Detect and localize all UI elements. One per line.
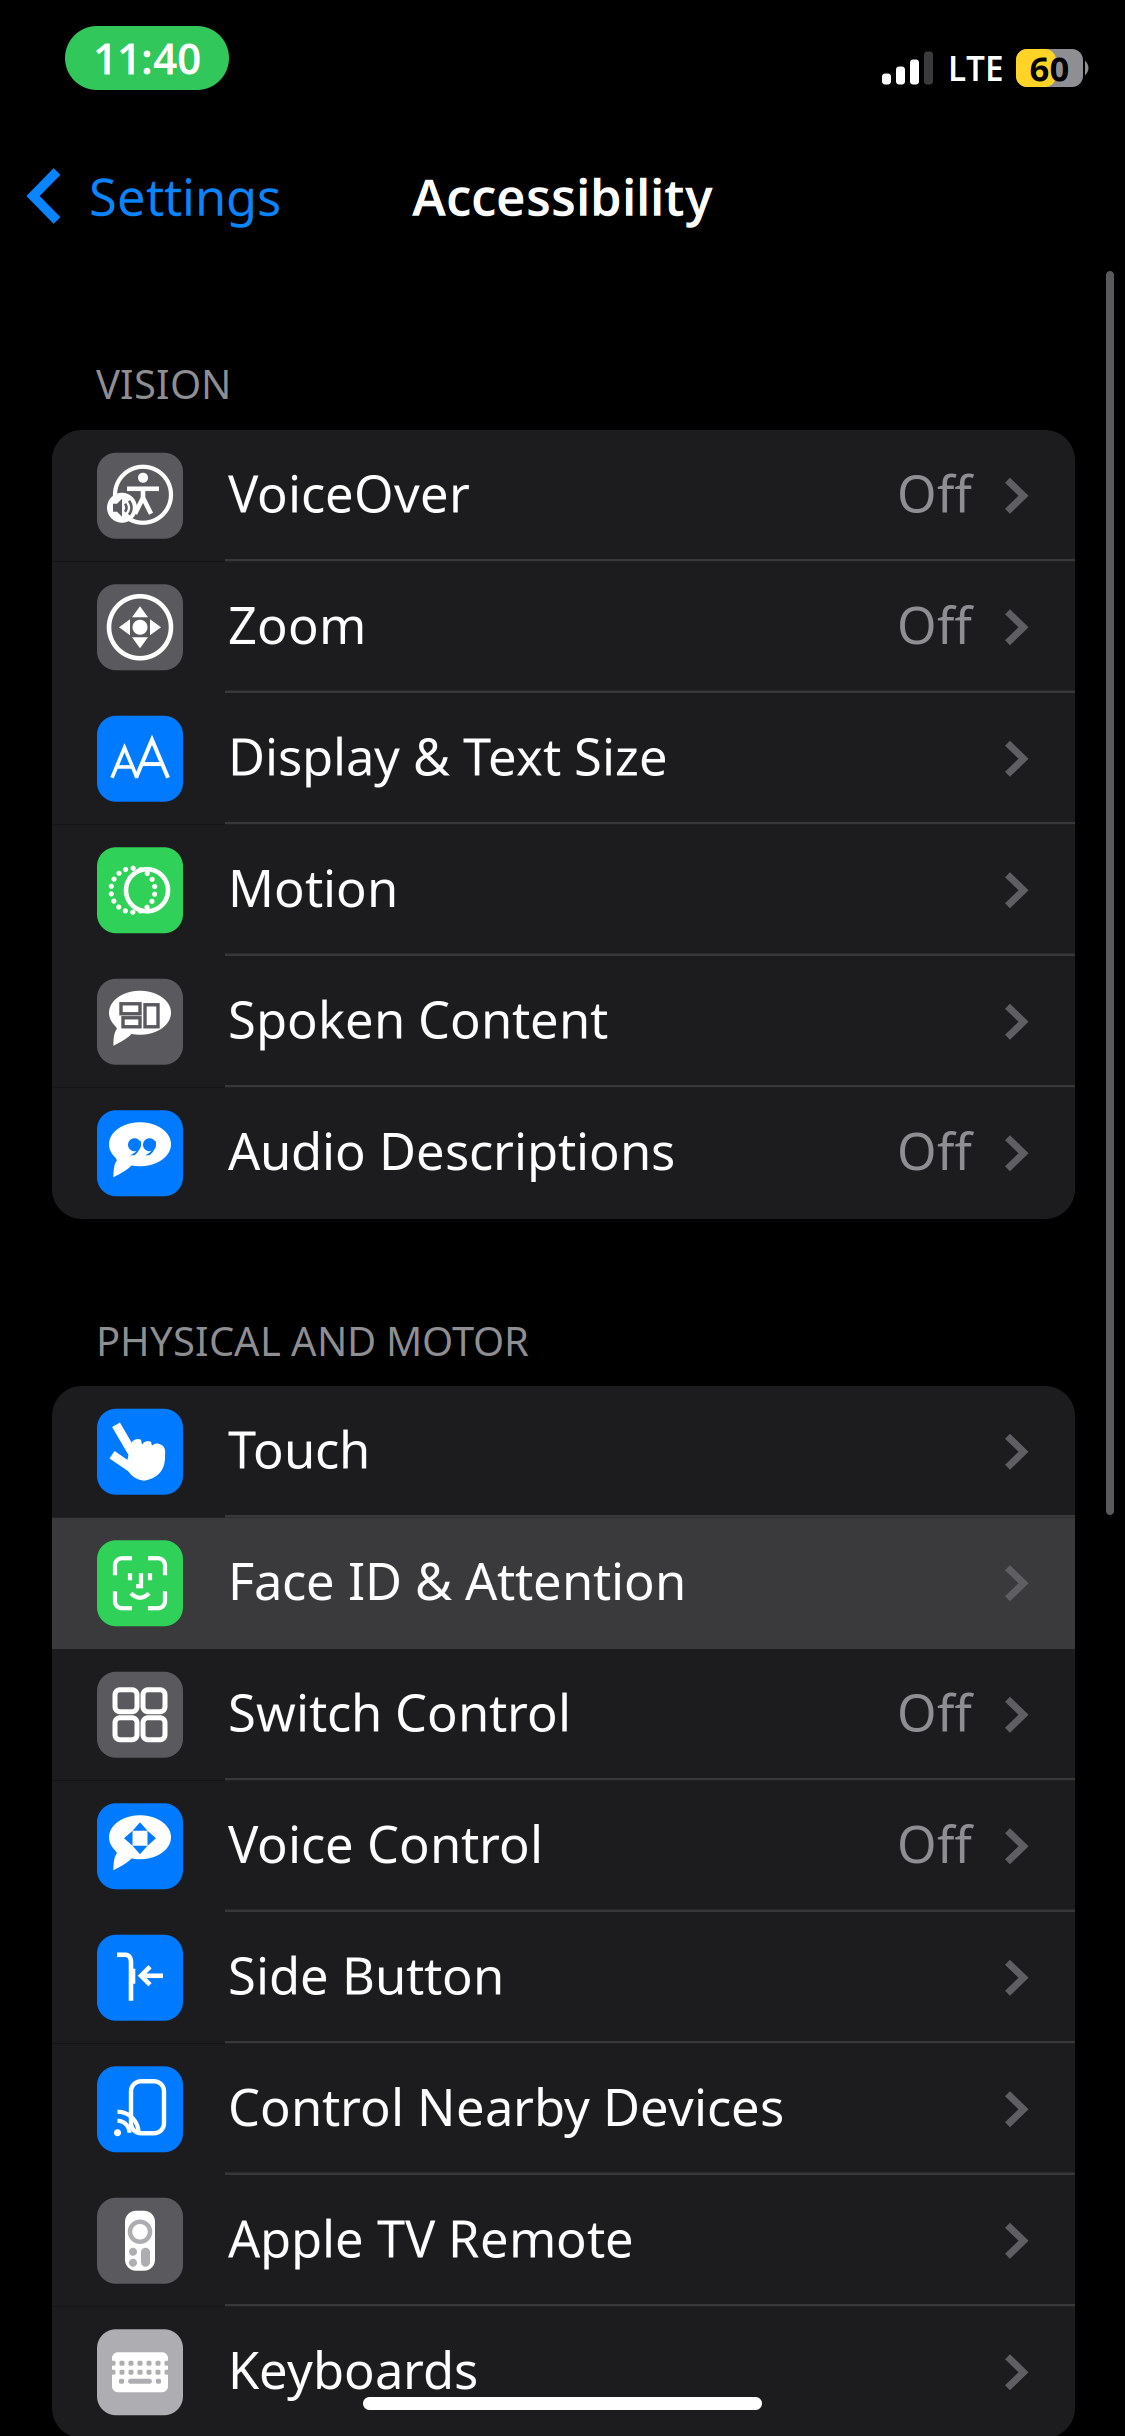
button[interactable]: Audio Descriptions	[52, 1087, 1075, 1219]
button[interactable]: Control Nearby Devices	[52, 2043, 1075, 2175]
button[interactable]: Motion	[52, 824, 1075, 956]
staticText: VoiceOver	[228, 459, 470, 526]
staticText: Switch Control	[228, 1678, 571, 1745]
button[interactable]: Settings	[0, 136, 305, 256]
staticText: PHYSICAL AND MOTOR	[96, 1314, 529, 1367]
staticText: 60	[1029, 45, 1069, 91]
button[interactable]: Display & Text Size	[52, 693, 1075, 824]
staticText: Side Button	[228, 1941, 504, 2008]
staticText: Control Nearby Devices	[228, 2073, 784, 2140]
staticText: Display & Text Size	[228, 722, 668, 789]
staticText: Zoom	[228, 591, 366, 658]
button[interactable]: VoiceOver	[52, 430, 1075, 561]
staticText: Off	[897, 459, 972, 526]
staticText: 11:40	[93, 30, 201, 86]
staticText: Off	[897, 1117, 972, 1184]
button[interactable]: Voice Control	[52, 1780, 1075, 1912]
staticText: Off	[897, 591, 972, 658]
staticText: VISION	[96, 357, 231, 410]
staticText: Face ID & Attention	[228, 1547, 686, 1614]
staticText: Settings	[89, 162, 281, 230]
button[interactable]: Switch Control	[52, 1649, 1075, 1780]
staticText: Spoken Content	[228, 985, 608, 1052]
staticText: Motion	[228, 854, 398, 921]
staticText: Apple TV Remote	[228, 2204, 634, 2271]
staticText: Audio Descriptions	[228, 1117, 675, 1184]
button[interactable]: Spoken Content	[52, 956, 1075, 1087]
button[interactable]: Face ID & Attention	[52, 1517, 1075, 1649]
staticText: Off	[897, 1810, 972, 1877]
staticText: Voice Control	[228, 1810, 543, 1877]
staticText: Accessibility	[412, 162, 713, 230]
button[interactable]: Keyboards	[52, 2306, 1075, 2436]
button[interactable]: Side Button	[52, 1912, 1075, 2043]
button[interactable]: Zoom	[52, 561, 1075, 693]
staticText: Keyboards	[228, 2336, 478, 2403]
staticText: Touch	[228, 1415, 370, 1482]
button[interactable]: Touch	[52, 1386, 1075, 1517]
staticText: LTE	[948, 46, 1004, 90]
button[interactable]: Apple TV Remote	[52, 2175, 1075, 2306]
staticText: Off	[897, 1678, 972, 1745]
